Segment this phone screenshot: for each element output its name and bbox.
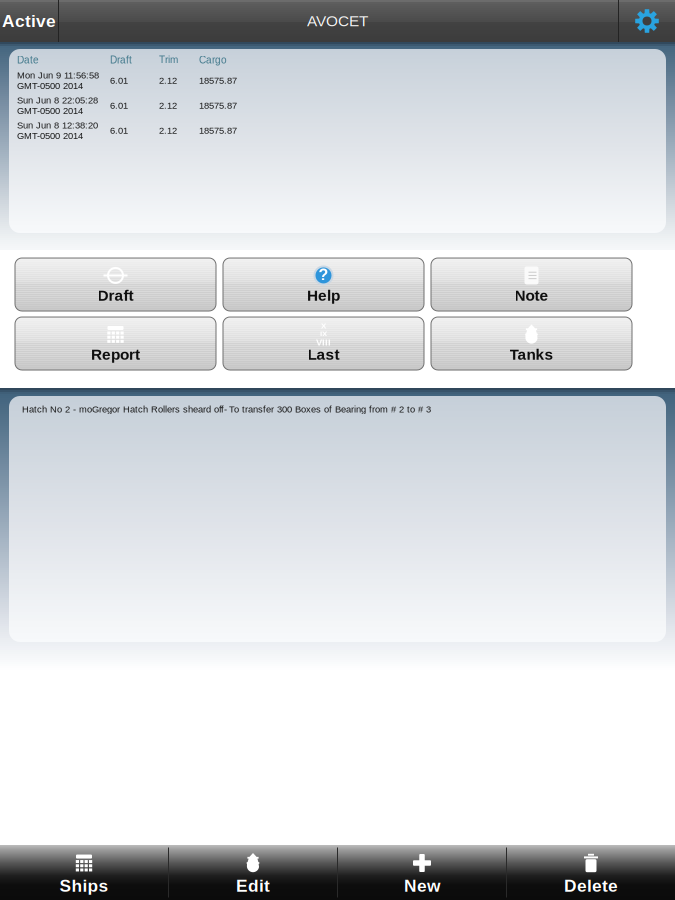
button[interactable]: Draft [15,258,216,311]
staticText: Sun Jun 8 12:38:20 [17,120,98,130]
staticText: VIII [316,337,331,348]
button[interactable]: Settings [619,0,675,42]
staticText: Cargo [199,54,227,66]
staticText: ? [318,266,328,284]
staticText: 18575.87 [199,125,237,136]
staticText: Tanks [509,346,553,363]
button[interactable]: Delete [507,845,675,900]
button[interactable]: Mon Jun 9 11:56:58 [9,68,666,93]
staticText: Edit [236,876,270,895]
staticText: Last [307,346,339,363]
staticText: Note [514,287,548,304]
staticText: Draft [110,54,132,66]
button[interactable]: Edit [169,845,337,900]
staticText: New [404,876,440,895]
staticText: 6.01 [110,125,128,136]
staticText: Hatch No 2 - moGregor Hatch Rollers shea… [22,404,431,414]
staticText: AVOCET [307,12,368,29]
staticText: Draft [97,287,133,304]
button[interactable]: ? [223,258,424,311]
staticText: Delete [564,876,618,895]
button[interactable]: Report [15,317,216,370]
staticText: X [321,321,326,330]
button[interactable]: Tanks [431,317,632,370]
staticText: Mon Jun 9 11:56:58 [17,70,99,80]
button[interactable]: Note [431,258,632,311]
button[interactable]: Ships [0,845,168,900]
staticText: Report [91,346,140,363]
button[interactable]: Sun Jun 8 22:05:28 [9,93,666,118]
button[interactable]: X [223,317,424,370]
staticText: Help [307,287,340,304]
staticText: 2.12 [159,100,177,111]
staticText: IX [320,329,327,338]
staticText: Active [2,11,56,31]
staticText: Sun Jun 8 22:05:28 [17,95,98,105]
staticText: 18575.87 [199,75,237,86]
staticText: 18575.87 [199,100,237,111]
staticText: 6.01 [110,75,128,86]
staticText: 2.12 [159,75,177,86]
staticText: Ships [59,876,108,895]
button[interactable]: Sun Jun 8 12:38:20 [9,118,666,143]
staticText: GMT-0500 2014 [17,105,83,116]
staticText: Date [17,54,39,66]
button[interactable]: New [338,845,506,900]
staticText: GMT-0500 2014 [17,80,83,91]
button[interactable]: Active [0,0,58,42]
staticText: Trim [159,54,178,66]
staticText: 2.12 [159,125,177,136]
staticText: GMT-0500 2014 [17,130,83,141]
staticText: 6.01 [110,100,128,111]
